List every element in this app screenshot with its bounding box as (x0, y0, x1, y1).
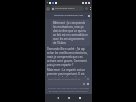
button[interactable]: pour repeter les torts que tu as (48, 78, 89, 85)
button[interactable]: Tabs (85, 7, 88, 10)
button[interactable]: chat.openai.com/c/ (52, 6, 83, 11)
staticText: Sélection et Demande Aide (54, 14, 83, 17)
button[interactable]: Recents (76, 94, 84, 102)
staticText: Bâtiment : Je comprends les motivations,… (53, 21, 88, 45)
staticText: chat.openai.com/c/ (55, 7, 75, 10)
button[interactable]: More options (89, 7, 91, 11)
staticText: pour repeter les torts que tu as (48, 78, 80, 81)
staticText: Matermer : Le repartir est un premier pa… (47, 68, 90, 77)
staticText: ChatGPT peut faire des erreurs. Envisage… (47, 87, 90, 93)
button[interactable]: Account (46, 7, 50, 11)
button[interactable]: Bâtiment : Je comprends les motivations,… (53, 21, 88, 45)
staticText: Demande Bien cadré : J'ai agi selon les … (47, 47, 90, 67)
button[interactable]: Home (65, 94, 73, 102)
button[interactable]: Back (54, 94, 62, 102)
